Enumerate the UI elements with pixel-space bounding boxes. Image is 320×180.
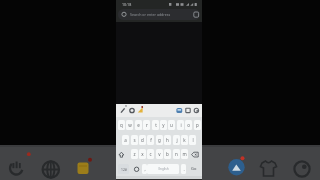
- staticText: v: [158, 151, 161, 157]
- button[interactable]: a: [122, 135, 129, 145]
- staticText: 10:18: [122, 2, 132, 7]
- staticText: j: [176, 137, 178, 143]
- button[interactable]: z: [131, 149, 138, 159]
- staticText: ,: [144, 166, 146, 172]
- button[interactable]: [136, 104, 144, 115]
- button[interactable]: [257, 157, 280, 178]
- button[interactable]: b: [164, 149, 171, 159]
- staticText: s: [133, 137, 136, 143]
- button[interactable]: [175, 104, 184, 115]
- staticText: b: [166, 151, 169, 157]
- staticText: a: [124, 137, 127, 143]
- button[interactable]: e: [135, 120, 142, 130]
- staticText: n: [175, 151, 178, 157]
- staticText: g: [158, 137, 161, 143]
- button[interactable]: x: [139, 149, 146, 159]
- button[interactable]: [119, 104, 128, 115]
- staticText: q: [120, 122, 123, 128]
- staticText: y: [162, 122, 165, 128]
- button[interactable]: n: [173, 149, 180, 159]
- staticText: k: [183, 137, 186, 143]
- staticText: l: [192, 137, 194, 143]
- staticText: w: [128, 122, 132, 128]
- button[interactable]: t: [152, 120, 159, 130]
- button[interactable]: f: [147, 135, 154, 145]
- button[interactable]: [118, 9, 200, 20]
- staticText: f: [150, 137, 152, 143]
- button[interactable]: q: [118, 120, 125, 130]
- button[interactable]: d: [139, 135, 146, 145]
- button[interactable]: [131, 164, 141, 174]
- button[interactable]: [128, 104, 136, 115]
- button[interactable]: ,: [142, 164, 147, 174]
- staticText: t: [155, 122, 157, 128]
- staticText: p: [196, 122, 199, 128]
- staticText: e: [137, 122, 140, 128]
- button[interactable]: c: [147, 149, 154, 159]
- button[interactable]: j: [173, 135, 180, 145]
- button[interactable]: [184, 104, 192, 115]
- button[interactable]: [6, 155, 32, 179]
- staticText: u: [170, 122, 173, 128]
- staticText: x: [141, 151, 144, 157]
- button[interactable]: English: [147, 164, 179, 174]
- staticText: Search or enter address: [130, 12, 171, 17]
- button[interactable]: l: [189, 135, 196, 145]
- staticText: i: [180, 122, 182, 128]
- button[interactable]: u: [168, 120, 175, 130]
- staticText: d: [141, 137, 144, 143]
- staticText: r: [146, 122, 148, 128]
- staticText: c: [149, 151, 152, 157]
- staticText: o: [187, 122, 190, 128]
- button[interactable]: [74, 155, 94, 178]
- button[interactable]: [40, 157, 62, 180]
- staticText: m: [182, 151, 187, 157]
- button[interactable]: [192, 10, 200, 19]
- button[interactable]: s: [131, 135, 138, 145]
- staticText: z: [133, 151, 136, 157]
- button[interactable]: p: [194, 120, 201, 130]
- button[interactable]: [118, 149, 129, 159]
- staticText: h: [166, 137, 169, 143]
- button[interactable]: v: [156, 149, 163, 159]
- button[interactable]: g: [156, 135, 163, 145]
- button[interactable]: y: [160, 120, 167, 130]
- button[interactable]: Go: [191, 166, 197, 171]
- staticText: .: [183, 166, 185, 172]
- button[interactable]: [226, 155, 247, 178]
- button[interactable]: [193, 104, 201, 115]
- button[interactable]: k: [181, 135, 188, 145]
- button[interactable]: w: [126, 120, 133, 130]
- button[interactable]: .: [181, 164, 186, 174]
- button[interactable]: r: [143, 120, 150, 130]
- button[interactable]: [292, 159, 313, 180]
- button[interactable]: h: [164, 135, 171, 145]
- button[interactable]: m: [181, 149, 188, 159]
- staticText: 12#: [121, 167, 127, 171]
- button[interactable]: [190, 149, 201, 159]
- button[interactable]: o: [185, 120, 192, 130]
- button[interactable]: 12#: [118, 164, 129, 174]
- staticText: English: [158, 167, 169, 171]
- button[interactable]: i: [177, 120, 184, 130]
